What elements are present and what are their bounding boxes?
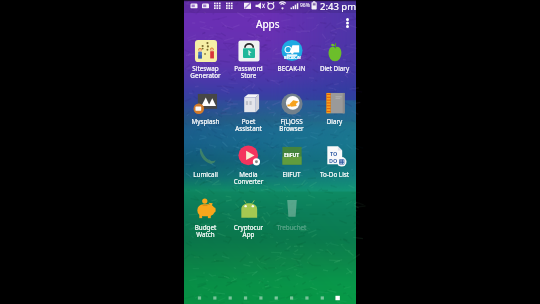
button[interactable]: Poet Assistant (227, 92, 270, 145)
staticText: BECAK-iN (284, 55, 301, 60)
button[interactable]: Lumicall (184, 145, 227, 198)
button[interactable]: TO (313, 145, 356, 198)
button[interactable]: Media Converter (227, 145, 270, 198)
staticText: Diary (313, 117, 356, 126)
staticText: Mysplash (184, 117, 227, 126)
staticText: Diet Diary (313, 64, 356, 73)
staticText: Cryptocur App (227, 223, 270, 239)
button[interactable]: Siteswap Generator (184, 39, 227, 92)
staticText: To-Do List (313, 170, 356, 179)
button[interactable]: Trebuchet (270, 198, 313, 251)
staticText: Lumicall (184, 170, 227, 179)
staticText: F(L)OSS Browser (270, 117, 313, 133)
button[interactable]: F(L)OSS Browser (270, 92, 313, 145)
button[interactable]: Password Store (227, 39, 270, 92)
staticText: BECAK-iN (270, 64, 313, 73)
button[interactable]: BECAK-iN (270, 39, 313, 92)
staticText: EliFUT (284, 152, 300, 159)
button[interactable]: Diet Diary (313, 39, 356, 92)
button[interactable]: Cryptocur App (227, 198, 270, 251)
staticText: Budget Watch (184, 223, 227, 239)
staticText: Trebuchet (270, 223, 313, 232)
staticText: Media Converter (227, 170, 270, 186)
button[interactable]: More options (342, 17, 353, 28)
button[interactable]: Diary (313, 92, 356, 145)
staticText: Password Store (227, 64, 270, 80)
button[interactable]: EliFUT (270, 145, 313, 198)
staticText: Poet Assistant (227, 117, 270, 133)
button[interactable]: Budget Watch (184, 198, 227, 251)
staticText: Siteswap Generator (184, 64, 227, 80)
staticText: 96% (300, 2, 310, 9)
staticText: Apps (256, 17, 280, 31)
staticText: TO (330, 150, 338, 157)
staticText: DO (329, 157, 338, 164)
button[interactable]: Mysplash (184, 92, 227, 145)
staticText: 2:43 pm (320, 0, 357, 13)
staticText: EliFUT (270, 170, 313, 179)
